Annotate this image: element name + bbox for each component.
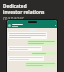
button[interactable]	[7, 20, 57, 28]
button[interactable]	[27, 40, 56, 45]
button[interactable]	[8, 32, 47, 39]
button[interactable]	[31, 52, 56, 55]
staticText: Dedicated	[3, 3, 27, 9]
staticText: investor relations	[3, 9, 45, 15]
other: Investor relations WhatsApp chat preview	[7, 20, 57, 72]
staticText: manager	[3, 15, 25, 21]
button[interactable]	[25, 62, 56, 67]
button[interactable]	[8, 46, 42, 51]
button[interactable]	[8, 56, 44, 61]
